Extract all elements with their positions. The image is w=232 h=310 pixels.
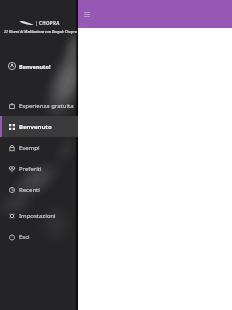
- staticText: Esperienza gratuita: [19, 102, 74, 110]
- button[interactable]: Esempi: [0, 137, 78, 158]
- staticText: Esci: [19, 233, 30, 241]
- button[interactable]: Open navigation menu: [82, 9, 92, 19]
- staticText: 21 Giorni di Meditazione con Deepak Chop…: [4, 29, 77, 34]
- staticText: CHOPRA: [39, 20, 60, 26]
- staticText: Benvenuto!: [19, 63, 51, 70]
- button[interactable]: Esci: [0, 226, 78, 247]
- staticText: Recenti: [19, 186, 40, 194]
- button[interactable]: Impostazioni: [0, 205, 78, 226]
- button[interactable]: Esperienza gratuita: [0, 95, 78, 116]
- staticText: Esempi: [19, 144, 40, 152]
- button[interactable]: Recenti: [0, 179, 78, 200]
- staticText: Preferiti: [19, 165, 42, 173]
- staticText: Benvenuto: [19, 123, 52, 131]
- button[interactable]: Benvenuto: [0, 116, 78, 137]
- staticText: Impostazioni: [19, 212, 56, 220]
- button[interactable]: Benvenuto!: [0, 59, 78, 73]
- button[interactable]: Preferiti: [0, 158, 78, 179]
